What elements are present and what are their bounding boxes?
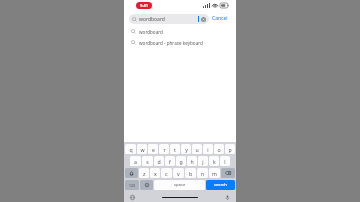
- button[interactable]: search: [206, 180, 235, 190]
- staticText: c: [165, 170, 168, 177]
- staticText: d: [157, 158, 161, 165]
- button[interactable]: v: [173, 168, 184, 178]
- button[interactable]: p: [225, 144, 235, 154]
- staticText: l: [224, 158, 226, 165]
- button[interactable]: 123: [125, 180, 139, 190]
- button[interactable]: z: [139, 168, 149, 178]
- staticText: search: [214, 182, 227, 188]
- button[interactable]: Emoji: [140, 180, 153, 190]
- button[interactable]: Shift: [125, 168, 138, 178]
- button[interactable]: o: [214, 144, 224, 154]
- staticText: m: [212, 170, 217, 177]
- staticText: 123: [129, 183, 135, 188]
- button[interactable]: e: [148, 144, 158, 154]
- button[interactable]: Dictation: [225, 195, 230, 200]
- staticText: a: [134, 158, 137, 165]
- staticText: u: [195, 146, 199, 153]
- staticText: q: [129, 146, 133, 153]
- button[interactable]: x: [150, 168, 160, 178]
- staticText: 9:41: [140, 3, 148, 8]
- staticText: y: [185, 146, 188, 153]
- staticText: x: [154, 170, 157, 177]
- staticText: g: [179, 158, 183, 165]
- staticText: o: [217, 146, 221, 153]
- button[interactable]: b: [185, 168, 196, 178]
- staticText: wordboard: [139, 29, 163, 35]
- button[interactable]: w: [137, 144, 147, 154]
- staticText: z: [143, 170, 146, 177]
- button[interactable]: g: [176, 156, 186, 166]
- button[interactable]: Cancel: [209, 13, 231, 24]
- button[interactable]: h: [187, 156, 197, 166]
- staticText: i: [207, 146, 209, 153]
- staticText: v: [177, 170, 180, 177]
- button[interactable]: u: [192, 144, 202, 154]
- staticText: w: [140, 146, 145, 153]
- button[interactable]: j: [198, 156, 208, 166]
- button[interactable]: n: [197, 168, 208, 178]
- button[interactable]: c: [161, 168, 172, 178]
- button[interactable]: l: [220, 156, 230, 166]
- button[interactable]: f: [165, 156, 175, 166]
- staticText: j: [202, 158, 204, 165]
- button[interactable]: s: [142, 156, 153, 166]
- staticText: b: [189, 170, 193, 177]
- button[interactable]: Backspace: [221, 168, 235, 178]
- staticText: f: [169, 158, 171, 165]
- button[interactable]: space: [154, 180, 205, 190]
- staticText: t: [174, 146, 176, 153]
- button[interactable]: q: [125, 144, 136, 154]
- staticText: k: [213, 158, 216, 165]
- button[interactable]: t: [170, 144, 180, 154]
- staticText: space: [174, 182, 186, 188]
- staticText: wordboard - phrase keyboard: [139, 40, 203, 46]
- button[interactable]: Clear text: [201, 17, 206, 22]
- button[interactable]: y: [181, 144, 191, 154]
- button[interactable]: Change keyboard: [130, 195, 135, 200]
- staticText: Cancel: [212, 15, 228, 22]
- staticText: h: [190, 158, 194, 165]
- staticText: r: [163, 146, 166, 153]
- button[interactable]: wordboard: [129, 14, 209, 24]
- staticText: e: [152, 146, 155, 153]
- staticText: wordboard: [139, 16, 198, 23]
- staticText: s: [146, 158, 149, 165]
- staticText: n: [201, 170, 205, 177]
- button[interactable]: wordboard - phrase keyboard: [124, 37, 236, 48]
- staticText: p: [228, 146, 232, 153]
- button[interactable]: d: [154, 156, 164, 166]
- button[interactable]: i: [203, 144, 213, 154]
- button[interactable]: k: [209, 156, 219, 166]
- button[interactable]: a: [130, 156, 141, 166]
- button[interactable]: m: [209, 168, 220, 178]
- button[interactable]: r: [159, 144, 169, 154]
- button[interactable]: wordboard: [124, 26, 236, 37]
